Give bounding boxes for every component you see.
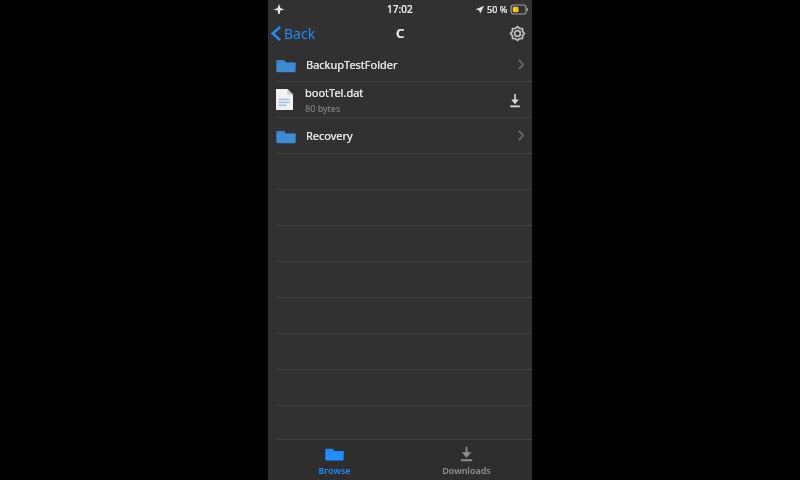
staticText: Recovery: [306, 128, 518, 143]
button[interactable]: bootTel.dat: [268, 82, 532, 118]
button[interactable]: Settings: [502, 18, 532, 48]
staticText: Browse: [318, 464, 351, 476]
button[interactable]: Recovery: [268, 118, 532, 154]
staticText: 80 bytes: [305, 102, 341, 114]
button[interactable]: Browse: [268, 440, 400, 480]
button[interactable]: Download: [506, 91, 524, 109]
staticText: bootTel.dat: [305, 85, 364, 100]
staticText: C: [396, 24, 405, 42]
staticText: BackupTestFolder: [306, 57, 518, 72]
staticText: 50 %: [487, 3, 508, 15]
staticText: 17:02: [387, 2, 413, 16]
button[interactable]: Downloads: [400, 440, 532, 480]
button[interactable]: BackupTestFolder: [268, 48, 532, 82]
button[interactable]: Back: [268, 18, 324, 48]
staticText: Back: [284, 24, 316, 43]
staticText: Downloads: [442, 464, 491, 476]
